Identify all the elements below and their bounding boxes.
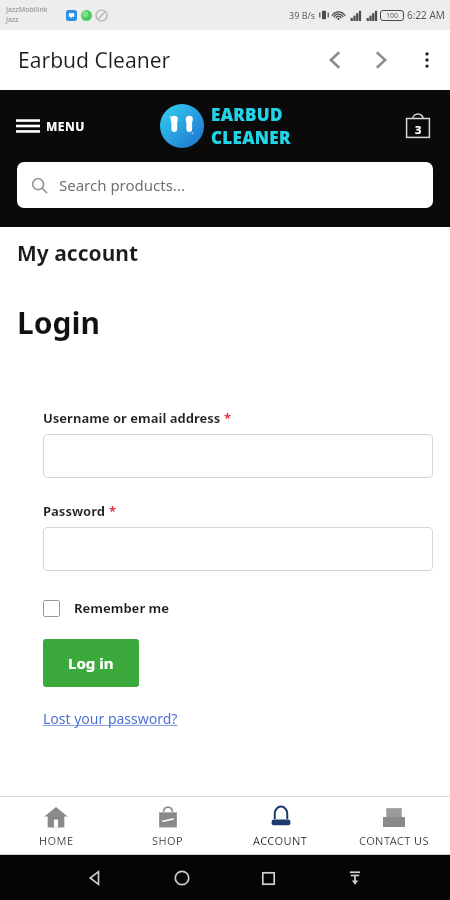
button[interactable]: Search products...: [17, 162, 433, 208]
button[interactable]: HOME: [0, 797, 112, 854]
staticText: Remember me: [74, 599, 170, 617]
button[interactable]: Back: [78, 861, 112, 895]
staticText: JazzMobilink: [6, 5, 48, 15]
staticText: CONTACT US: [359, 833, 429, 848]
button[interactable]: [43, 527, 433, 571]
button[interactable]: More options: [404, 37, 450, 83]
staticText: Jazz: [6, 15, 19, 25]
staticText: SHOP: [152, 833, 184, 848]
staticText: ACCOUNT: [253, 833, 308, 848]
button[interactable]: Recents: [251, 861, 285, 895]
button[interactable]: MENU: [16, 118, 85, 134]
staticText: CLEANER: [211, 126, 291, 149]
staticText: Earbud Cleaner: [18, 46, 171, 75]
button[interactable]: ACCOUNT: [224, 797, 337, 854]
button[interactable]: SHOP: [112, 797, 224, 854]
staticText: MENU: [46, 118, 85, 134]
staticText: Login: [17, 302, 100, 343]
button[interactable]: Home: [165, 861, 199, 895]
button[interactable]: CONTACT US: [337, 797, 450, 854]
staticText: 3: [415, 122, 422, 137]
staticText: Search products...: [59, 175, 185, 195]
button[interactable]: Remember me: [43, 599, 170, 617]
staticText: Lost your password?: [43, 709, 178, 728]
button[interactable]: Hide navigation bar: [338, 861, 372, 895]
staticText: 100: [386, 11, 399, 21]
staticText: Log in: [68, 653, 114, 673]
staticText: 39 B/s: [289, 9, 316, 21]
button[interactable]: [43, 434, 433, 478]
staticText: 6:22 AM: [407, 8, 445, 22]
staticText: *: [224, 409, 232, 427]
staticText: Username or email address: [43, 409, 224, 427]
button[interactable]: Back: [312, 37, 358, 83]
staticText: My account: [17, 239, 139, 268]
staticText: EARBUD: [211, 103, 283, 126]
button[interactable]: Lost your password?: [43, 709, 178, 728]
button[interactable]: Log in: [43, 639, 139, 687]
staticText: *: [109, 502, 117, 520]
staticText: HOME: [39, 833, 74, 848]
button[interactable]: Forward: [358, 37, 404, 83]
button[interactable]: Cart, 3 items: [400, 108, 436, 144]
staticText: Password: [43, 502, 109, 520]
